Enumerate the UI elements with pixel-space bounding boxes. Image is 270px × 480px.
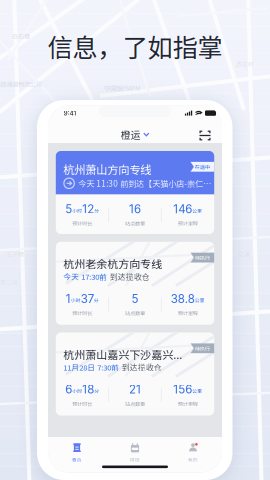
button[interactable]: 杭州萧山方向专线 (56, 151, 214, 234)
staticText: 预计里程 (178, 400, 198, 407)
staticText: 分 (94, 207, 99, 214)
staticText: 公里 (195, 297, 205, 304)
staticText: 到达揽收仓 (110, 271, 150, 282)
staticText: 王子建 (6, 250, 24, 258)
button[interactable]: 杭州老余杭方向专线 (56, 242, 214, 325)
staticText: 1 (66, 292, 71, 306)
staticText: 预计时长 (72, 309, 92, 317)
staticText: 21 (129, 382, 141, 396)
staticText: 我的 (188, 456, 198, 463)
staticText: 预计时长 (72, 400, 92, 407)
staticText: 待执行 (195, 344, 210, 352)
staticText: 分 (94, 387, 99, 394)
staticText: 146 (173, 202, 192, 216)
button[interactable]: 杭州萧山嘉兴下沙嘉兴... (56, 332, 214, 415)
staticText: 政通道物流公司 (0, 79, 42, 89)
staticText: 6 (65, 382, 72, 396)
staticText: 小时 (71, 297, 81, 304)
button[interactable]: 排班 (106, 442, 164, 464)
staticText: 小时 (72, 207, 82, 214)
staticText: 待执行 (195, 254, 210, 261)
button[interactable]: Scan (199, 130, 210, 141)
staticText: 今天 11:30 前到达【天猫小店-崇仁路... (78, 177, 211, 189)
staticText: 到达揽收仓 (122, 361, 162, 373)
staticText: 16 (129, 202, 141, 216)
staticText: 在途中 (195, 163, 210, 171)
staticText: 5 (131, 292, 138, 306)
staticText: 白石巷 (12, 32, 30, 40)
staticText: 交通 (238, 250, 250, 258)
staticText: 5 (65, 202, 72, 216)
staticText: 首页 (72, 456, 82, 463)
staticText: 信息，了如指掌 (47, 28, 222, 64)
staticText: 11月28日 7:30前 (63, 361, 119, 373)
staticText: 预计里程 (178, 309, 198, 317)
staticText: 站点数量 (125, 309, 145, 317)
button[interactable]: 我的 (164, 442, 222, 464)
staticText: 公里 (192, 207, 202, 214)
staticText: 站点数量 (125, 400, 145, 407)
staticText: 今天 17:30前 (63, 271, 107, 282)
staticText: 156 (173, 382, 192, 396)
button[interactable]: 首页 (48, 442, 106, 464)
staticText: 9:41 (63, 109, 76, 117)
staticText: 预计时长 (72, 219, 92, 227)
staticText: 站点数量 (125, 219, 145, 227)
staticText: 公里 (192, 387, 202, 394)
staticText: 橙运 (120, 127, 140, 141)
staticText: 小时 (72, 387, 82, 394)
staticText: 杭州萧山方向专线 (63, 161, 151, 178)
staticText: 排班 (130, 456, 140, 463)
staticText: 38.8 (171, 292, 195, 306)
staticText: 预计里程 (178, 219, 198, 227)
staticText: 18 (82, 382, 94, 396)
staticText: 杭州老余杭方向专线 (63, 255, 162, 271)
staticText: 西交杭 (236, 60, 254, 68)
staticText: 杭州萧山嘉兴下沙嘉兴... (63, 346, 182, 362)
staticText: 12 (82, 202, 94, 216)
staticText: 37 (81, 292, 94, 306)
staticText: 分 (94, 297, 99, 304)
button[interactable]: 橙运 (120, 127, 150, 141)
staticText: 中国银行ATM (104, 83, 140, 93)
